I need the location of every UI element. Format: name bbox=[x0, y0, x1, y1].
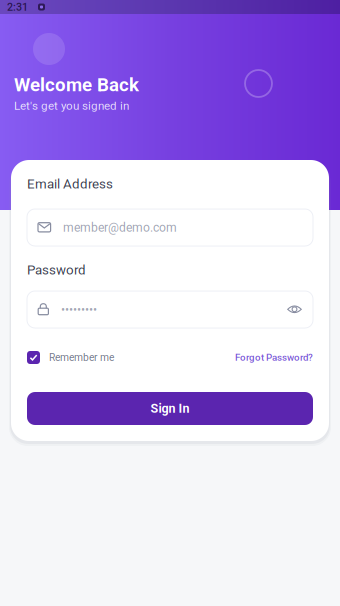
staticText: Email Address bbox=[27, 176, 113, 192]
staticText: Password bbox=[27, 262, 86, 278]
button[interactable]: Show password bbox=[282, 297, 303, 322]
staticText: Let's get you signed in bbox=[14, 99, 129, 112]
staticText: Welcome Back bbox=[14, 74, 139, 96]
staticText: Forgot Password? bbox=[235, 352, 313, 363]
button[interactable]: Sign In bbox=[27, 392, 313, 425]
staticText: Remember me bbox=[49, 351, 114, 363]
staticText: member@demo.com bbox=[63, 220, 177, 235]
button[interactable]: Forgot Password? bbox=[235, 351, 313, 364]
button[interactable]: Remember me bbox=[27, 351, 139, 364]
staticText: 2:31 bbox=[7, 1, 28, 13]
staticText: ••••••••• bbox=[61, 302, 97, 317]
staticText: Sign In bbox=[150, 401, 189, 416]
